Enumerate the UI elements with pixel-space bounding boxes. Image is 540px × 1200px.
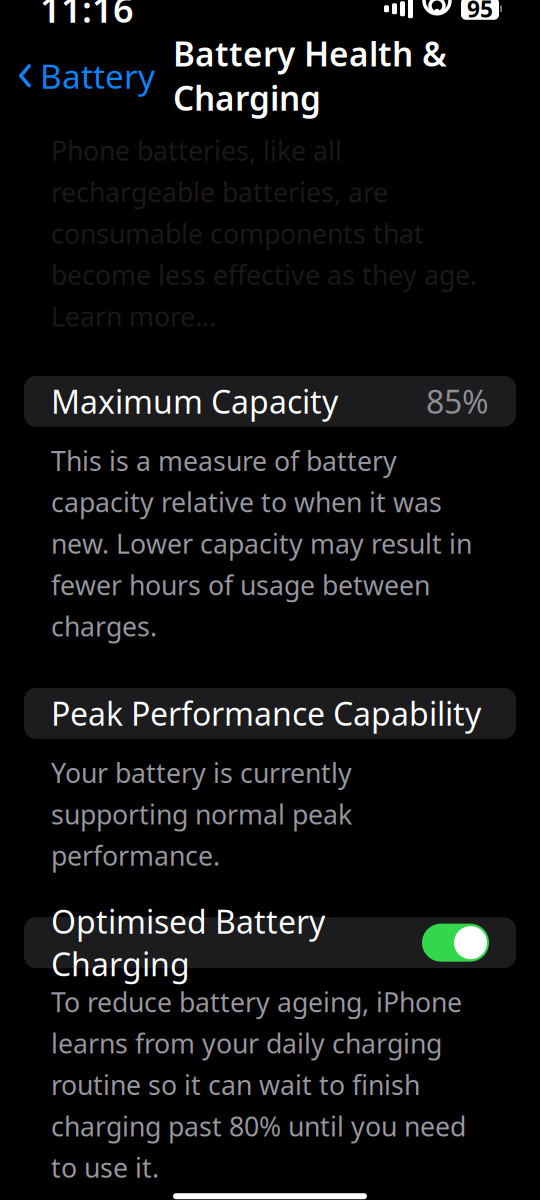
staticText: 95 xyxy=(467,0,493,24)
staticText: Battery xyxy=(40,54,155,98)
button[interactable]: Battery xyxy=(0,46,167,106)
staticText: Optimised Battery Charging xyxy=(51,900,325,985)
button[interactable]: Maximum Capacity xyxy=(24,376,516,427)
staticText: To reduce battery ageing, iPhone learns … xyxy=(51,984,466,1185)
button[interactable]: Optimised Battery Charging xyxy=(422,924,489,962)
button[interactable]: Optimised Battery Charging xyxy=(24,917,516,968)
staticText: Peak Performance Capability xyxy=(51,692,481,735)
staticText: 11:16 xyxy=(40,0,134,33)
staticText: Your battery is currently supporting nor… xyxy=(51,755,352,873)
staticText: This is a measure of battery capacity re… xyxy=(51,443,472,644)
staticText: Phone batteries, like all rechargeable b… xyxy=(51,133,477,334)
staticText: 85% xyxy=(426,380,489,423)
staticText: Maximum Capacity xyxy=(51,380,338,423)
button[interactable]: Peak Performance Capability xyxy=(24,688,516,739)
staticText: Battery Health & Charging xyxy=(173,31,447,120)
